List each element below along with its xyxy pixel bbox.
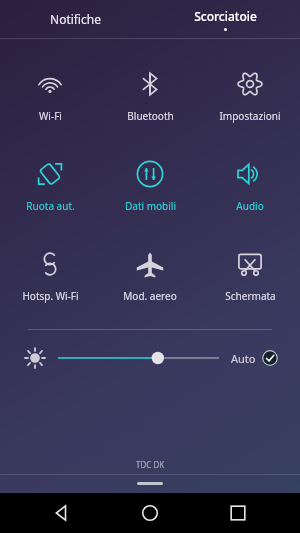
- button[interactable]: Bluetooth: [100, 51, 200, 141]
- staticText: Wi-Fi: [39, 109, 62, 123]
- button[interactable]: Back: [36, 493, 88, 533]
- staticText: Audio: [236, 199, 264, 213]
- staticText: Impostazioni: [219, 109, 281, 123]
- button[interactable]: Notifiche: [0, 0, 150, 38]
- button[interactable]: Mod. aereo: [100, 231, 200, 321]
- button[interactable]: Audio: [200, 141, 300, 231]
- button[interactable]: Home: [124, 493, 176, 533]
- button[interactable]: Hotsp. Wi-Fi: [0, 231, 100, 321]
- button[interactable]: Brightness: [22, 345, 48, 371]
- button[interactable]: Drag handle: [137, 482, 163, 485]
- staticText: Ruota aut.: [26, 199, 75, 213]
- button[interactable]: Dati mobili: [100, 141, 200, 231]
- button[interactable]: Schermata: [200, 231, 300, 321]
- staticText: Hotsp. Wi-Fi: [22, 289, 79, 303]
- button[interactable]: Brightness slider: [58, 344, 219, 372]
- staticText: Schermata: [225, 289, 276, 303]
- staticText: Dati mobili: [125, 199, 176, 213]
- button[interactable]: Ruota aut.: [0, 141, 100, 231]
- staticText: Bluetooth: [127, 109, 174, 123]
- staticText: TDC DK: [136, 459, 165, 470]
- button[interactable]: Impostazioni: [200, 51, 300, 141]
- staticText: Mod. aereo: [123, 289, 177, 303]
- button[interactable]: Wi-Fi: [0, 51, 100, 141]
- staticText: Scorciatoie: [194, 8, 257, 24]
- staticText: Notifiche: [50, 11, 101, 27]
- staticText: Auto: [231, 351, 256, 366]
- button[interactable]: Recents: [212, 493, 264, 533]
- button[interactable]: Scorciatoie: [150, 0, 300, 38]
- button[interactable]: Auto: [231, 350, 278, 366]
